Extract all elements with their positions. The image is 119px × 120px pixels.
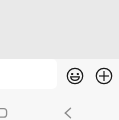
button[interactable]: Add <box>92 64 116 88</box>
button[interactable]: Back <box>60 105 76 120</box>
button[interactable]: Emoji <box>63 64 87 88</box>
button[interactable]: Recents <box>0 106 8 120</box>
